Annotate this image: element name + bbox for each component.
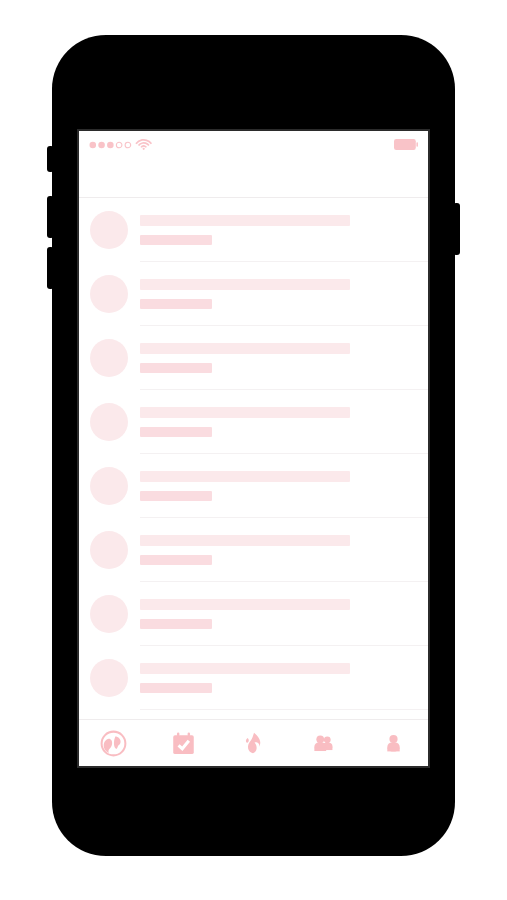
button[interactable]: Trending	[218, 720, 288, 766]
button[interactable]	[79, 518, 428, 582]
button[interactable]	[79, 198, 428, 262]
button[interactable]: Schedule	[148, 720, 218, 766]
button[interactable]	[79, 582, 428, 646]
button[interactable]	[79, 390, 428, 454]
button[interactable]	[79, 262, 428, 326]
button[interactable]: Groups	[288, 720, 358, 766]
button[interactable]	[79, 646, 428, 710]
button[interactable]	[79, 326, 428, 390]
button[interactable]: Explore	[79, 720, 148, 766]
button[interactable]: Profile	[358, 720, 428, 766]
button[interactable]	[79, 454, 428, 518]
